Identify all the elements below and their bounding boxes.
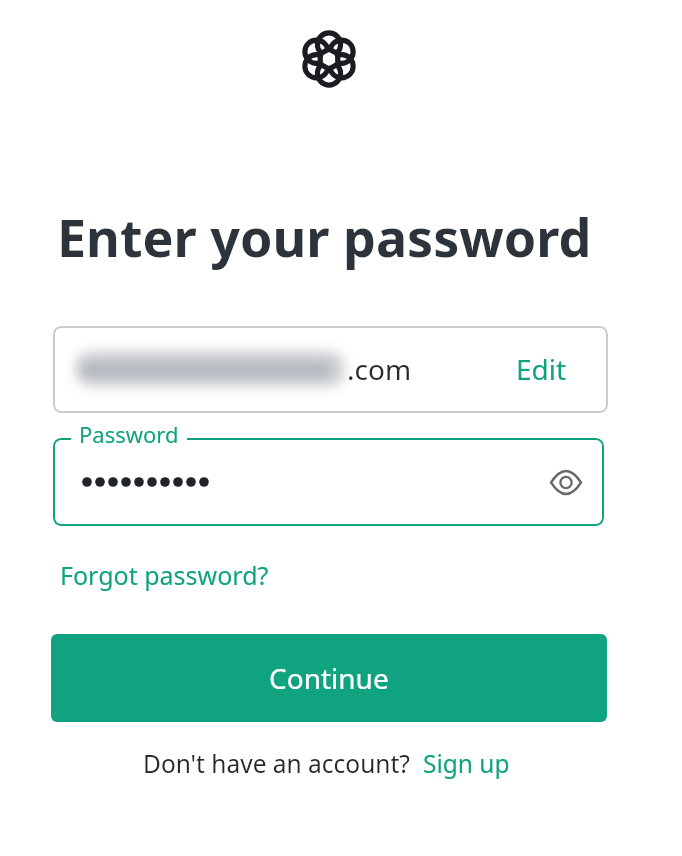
button[interactable]: Continue — [51, 634, 607, 722]
button[interactable]: Forgot password? — [60, 558, 269, 592]
button[interactable]: Sign up — [423, 747, 510, 780]
button[interactable] — [53, 438, 604, 526]
staticText: Don't have an account? — [143, 747, 410, 780]
button[interactable]: .com — [53, 326, 608, 413]
staticText: Password — [79, 419, 179, 449]
staticText: Enter your password — [57, 201, 592, 272]
staticText: Continue — [269, 659, 389, 697]
button[interactable]: Edit — [516, 350, 567, 388]
staticText: .com — [347, 350, 412, 388]
button[interactable] — [549, 470, 583, 495]
